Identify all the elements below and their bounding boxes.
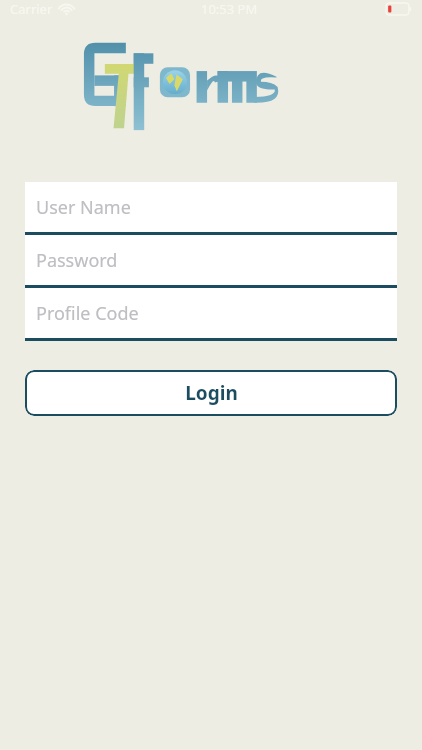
button[interactable]: Profile Code (25, 288, 397, 338)
button[interactable]: Login (25, 370, 397, 416)
staticText: Carrier (10, 0, 53, 18)
staticText: User Name (36, 195, 131, 220)
staticText: Profile Code (36, 301, 139, 326)
staticText: 10:53 PM (201, 0, 258, 18)
button[interactable]: Password (25, 235, 397, 285)
button[interactable]: User Name (25, 182, 397, 232)
staticText: Password (36, 248, 118, 273)
staticText: Login (185, 380, 238, 406)
